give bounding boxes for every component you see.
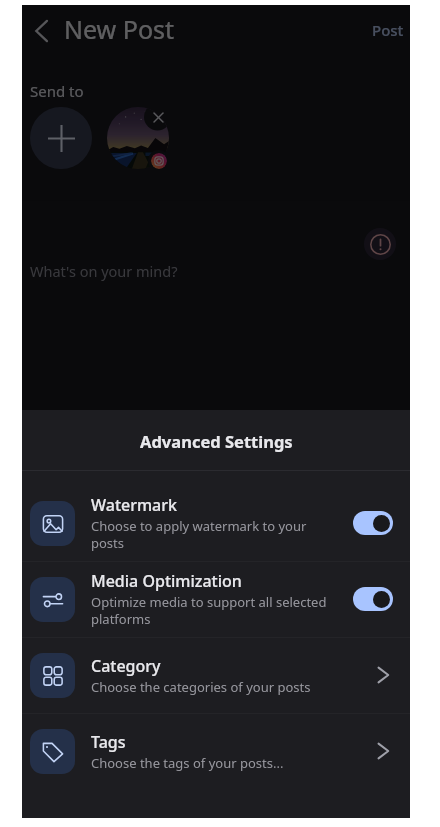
button[interactable]: Category bbox=[363, 655, 403, 695]
staticText: What's on your mind? bbox=[30, 261, 178, 281]
staticText: Choose to apply watermark to your posts bbox=[91, 517, 334, 552]
button[interactable]: Watermark toggle bbox=[353, 511, 393, 535]
button[interactable]: Category bbox=[22, 637, 410, 713]
button[interactable]: Back bbox=[19, 9, 63, 53]
staticText: Category bbox=[91, 655, 161, 677]
button[interactable]: Watermark bbox=[22, 485, 410, 561]
staticText: Optimize media to support all selected p… bbox=[91, 593, 334, 628]
button[interactable]: Add account bbox=[30, 107, 92, 169]
staticText: Send to bbox=[30, 81, 84, 101]
staticText: Choose the tags of your posts... bbox=[91, 754, 284, 772]
button[interactable]: Tags bbox=[363, 731, 403, 771]
staticText: Watermark bbox=[91, 494, 177, 516]
button[interactable]: Warning bbox=[364, 228, 396, 260]
button[interactable] bbox=[107, 107, 169, 169]
button[interactable]: Media Optimization bbox=[22, 561, 410, 637]
button[interactable]: Media Optimization toggle bbox=[353, 587, 393, 611]
button[interactable]: Tags bbox=[22, 713, 410, 789]
staticText: New Post bbox=[64, 12, 175, 46]
staticText: Tags bbox=[91, 731, 126, 753]
button[interactable]: Post bbox=[360, 13, 416, 47]
staticText: Media Optimization bbox=[91, 570, 242, 592]
staticText: Choose the categories of your posts bbox=[91, 678, 311, 696]
staticText: Advanced Settings bbox=[140, 430, 293, 452]
staticText: Post bbox=[372, 20, 404, 40]
button[interactable]: Remove account bbox=[146, 105, 170, 129]
